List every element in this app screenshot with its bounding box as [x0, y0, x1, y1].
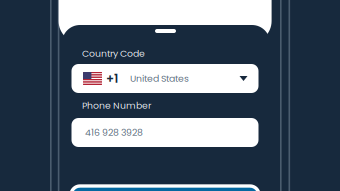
button[interactable]: Continue	[71, 186, 259, 191]
staticText: Phone Number	[82, 99, 151, 112]
button[interactable]: 416 928 3928	[71, 118, 258, 147]
staticText: Country Code	[82, 47, 145, 60]
staticText: +1	[106, 70, 118, 87]
staticText: 416 928 3928	[85, 126, 143, 139]
button[interactable]: +1	[71, 64, 258, 93]
staticText: United States	[130, 72, 189, 85]
